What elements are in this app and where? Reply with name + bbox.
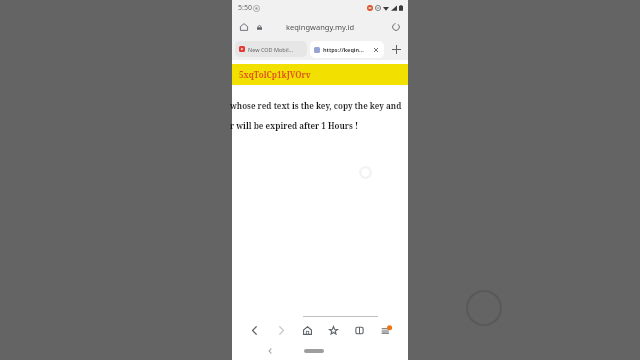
staticText: whose red text is the key, copy the key … xyxy=(230,100,406,111)
button[interactable]: Home xyxy=(237,20,251,34)
button[interactable]: Bookmarks xyxy=(325,322,341,338)
button[interactable]: Forward xyxy=(273,322,289,338)
staticText: New COD Mobil... xyxy=(248,46,293,53)
staticText: 5xqTolCp1kJVOrv xyxy=(239,69,311,80)
button[interactable]: Back xyxy=(246,322,262,338)
button[interactable]: Tabs xyxy=(351,322,367,338)
button[interactable]: New COD Mobil... xyxy=(235,41,307,57)
button[interactable]: Menu xyxy=(378,322,394,338)
button[interactable]: https://keqin... xyxy=(310,41,384,58)
staticText: 5:50 xyxy=(238,3,252,13)
button[interactable]: Home xyxy=(304,349,324,353)
button[interactable]: Reload xyxy=(389,20,403,34)
staticText: https://keqin... xyxy=(323,46,372,53)
staticText: r will be expired after 1 Hours ! xyxy=(230,120,358,131)
button[interactable]: Close tab xyxy=(372,46,380,54)
staticText: keqingwangy.my.id xyxy=(286,22,355,32)
button[interactable]: Site information xyxy=(253,21,265,33)
button[interactable]: Back xyxy=(263,344,277,358)
button[interactable]: New tab xyxy=(388,41,404,57)
button[interactable]: Home xyxy=(299,322,315,338)
